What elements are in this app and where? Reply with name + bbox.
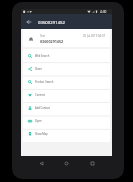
button[interactable]: Show Map bbox=[23, 127, 110, 140]
button[interactable]: Connect bbox=[23, 88, 110, 101]
button[interactable]: Web Search bbox=[23, 49, 110, 62]
button[interactable]: Add Contact bbox=[23, 101, 110, 114]
button[interactable]: Back bbox=[36, 156, 47, 170]
staticText: Show Map bbox=[35, 132, 48, 136]
staticText: 03600291452 bbox=[38, 19, 66, 25]
staticText: Share bbox=[35, 67, 42, 71]
button[interactable]: Open bbox=[23, 114, 110, 127]
button[interactable]: Recents bbox=[87, 156, 98, 170]
staticText: Connect bbox=[35, 93, 46, 97]
staticText: Add Contact bbox=[35, 106, 50, 110]
staticText: Web Search bbox=[35, 54, 50, 58]
button[interactable]: Home bbox=[61, 156, 72, 170]
staticText: Product Search bbox=[35, 80, 54, 84]
button[interactable]: Text bbox=[23, 29, 110, 47]
staticText: Open bbox=[35, 119, 42, 123]
staticText: 03600291452 bbox=[40, 39, 64, 44]
staticText: 25 Jul 2019 04:57 bbox=[83, 34, 106, 38]
button[interactable]: Share bbox=[23, 62, 110, 75]
staticText: 4:30 bbox=[100, 10, 107, 14]
staticText: Text bbox=[40, 34, 45, 38]
button[interactable]: Product Search bbox=[23, 75, 110, 88]
button[interactable]: Back bbox=[23, 14, 35, 29]
